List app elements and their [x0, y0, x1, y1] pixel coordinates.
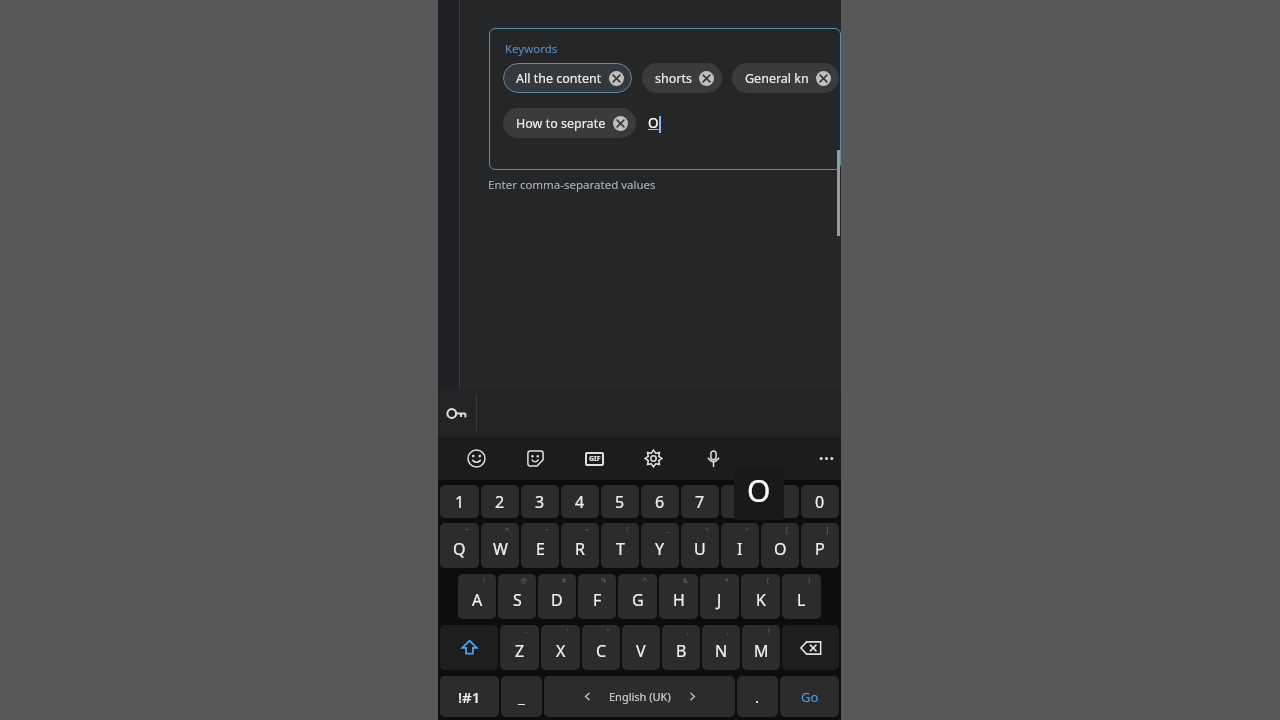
staticText: G	[632, 589, 644, 611]
button[interactable]: >	[721, 523, 759, 568]
button[interactable]: Emoji	[459, 437, 493, 480]
staticText: _	[518, 687, 525, 707]
staticText: 6	[655, 491, 665, 513]
button[interactable]: ^	[618, 574, 657, 619]
staticText: R	[575, 538, 585, 560]
button[interactable]: ]	[801, 523, 839, 568]
button[interactable]: 5	[601, 485, 639, 518]
button[interactable]: *	[700, 574, 739, 619]
staticText: ÷	[545, 525, 549, 534]
staticText: 7	[695, 491, 705, 513]
button[interactable]: _	[641, 523, 679, 568]
staticText: Q	[453, 538, 466, 560]
button[interactable]: +	[440, 523, 479, 568]
staticText: *	[725, 576, 729, 585]
button[interactable]: Stickers	[518, 437, 552, 480]
button[interactable]: .	[737, 676, 778, 717]
button[interactable]: <	[681, 523, 719, 568]
button[interactable]: @	[498, 574, 536, 619]
button[interactable]: ÷	[521, 523, 559, 568]
staticText: E	[536, 538, 545, 560]
staticText: K	[756, 589, 766, 611]
button[interactable]: [	[761, 523, 799, 568]
button[interactable]: Space, English (UK)	[544, 676, 735, 717]
button[interactable]: Settings	[636, 437, 670, 480]
staticText: :	[647, 627, 649, 636]
button[interactable]: All the content	[503, 63, 632, 93]
button[interactable]: 4	[561, 485, 599, 518]
button[interactable]: /	[601, 523, 639, 568]
staticText: J	[717, 589, 722, 611]
button[interactable]: 2	[481, 485, 519, 518]
staticText: ?	[767, 627, 770, 636]
button[interactable]: ?	[742, 625, 780, 670]
staticText: L	[797, 589, 806, 611]
staticText: .	[755, 687, 760, 707]
button[interactable]: Keywords	[489, 28, 841, 170]
staticText: #	[562, 576, 567, 585]
staticText: O	[774, 538, 787, 560]
button[interactable]: Password	[438, 389, 476, 437]
button[interactable]: More options	[809, 437, 843, 480]
button[interactable]: ×	[481, 523, 519, 568]
staticText: =	[585, 525, 589, 534]
button[interactable]: !	[458, 574, 496, 619]
button[interactable]: General kn	[732, 63, 839, 93]
button[interactable]: 1	[440, 485, 479, 518]
button[interactable]: Voice input	[696, 437, 730, 480]
button[interactable]: "	[582, 625, 620, 670]
button[interactable]: '	[541, 625, 580, 670]
staticText: M	[754, 640, 769, 662]
staticText: +	[465, 525, 469, 534]
button[interactable]: #	[538, 574, 576, 619]
staticText: V	[636, 640, 646, 662]
button[interactable]: %	[578, 574, 616, 619]
button[interactable]: 9	[761, 485, 799, 518]
button[interactable]: ;	[662, 625, 700, 670]
staticText: X	[556, 640, 566, 662]
staticText: English (UK)	[609, 689, 671, 704]
button[interactable]: 7	[681, 485, 719, 518]
staticText: ]	[826, 525, 829, 534]
staticText: O	[747, 470, 771, 511]
staticText: Z	[515, 640, 525, 662]
staticText: 2	[495, 491, 505, 513]
button[interactable]: (	[741, 574, 780, 619]
button[interactable]: Go	[780, 676, 839, 717]
button[interactable]: Shift	[440, 625, 498, 670]
staticText: 1	[455, 491, 465, 513]
staticText: D	[551, 589, 563, 611]
staticText: 4	[575, 491, 585, 513]
staticText: -	[525, 627, 528, 636]
button[interactable]: GIF	[577, 437, 611, 480]
staticText: O	[648, 114, 659, 132]
staticText: !	[483, 576, 485, 585]
button[interactable]: shorts	[642, 63, 722, 93]
button[interactable]: :	[622, 625, 660, 670]
button[interactable]: 8	[721, 485, 759, 518]
staticText: N	[715, 640, 728, 662]
staticText: ×	[505, 525, 509, 534]
staticText: P	[815, 538, 825, 560]
button[interactable]: Backspace	[782, 625, 839, 670]
button[interactable]: =	[561, 523, 599, 568]
button[interactable]: 6	[641, 485, 679, 518]
staticText: [	[786, 525, 789, 534]
button[interactable]: 0	[801, 485, 839, 518]
staticText: '	[567, 627, 569, 636]
staticText: U	[694, 538, 706, 560]
button[interactable]: )	[782, 574, 821, 619]
button[interactable]: How to seprate	[503, 108, 636, 138]
button[interactable]: &	[659, 574, 698, 619]
button[interactable]: 3	[521, 485, 559, 518]
staticText: ^	[643, 576, 647, 585]
button[interactable]: ,	[702, 625, 740, 670]
button[interactable]: -	[500, 625, 539, 670]
staticText: !#1	[458, 687, 481, 707]
staticText: Y	[655, 538, 665, 560]
staticText: All the content	[516, 70, 602, 87]
button[interactable]: !#1	[440, 676, 499, 717]
staticText: 0	[815, 491, 825, 513]
button[interactable]: _	[501, 676, 542, 717]
